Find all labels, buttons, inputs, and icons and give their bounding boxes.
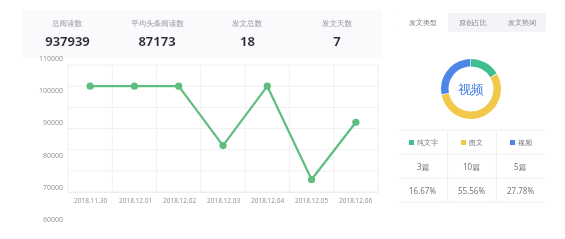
staticText: 发文天数 xyxy=(322,19,352,28)
button[interactable]: 发文热词 xyxy=(497,13,546,32)
staticText: 发文总数 xyxy=(232,19,262,28)
staticText: 发文热词 xyxy=(508,18,536,27)
staticText: 纯文字 xyxy=(417,138,438,147)
staticText: 2018.12.06 xyxy=(339,196,373,205)
staticText: 70000 xyxy=(43,183,64,193)
staticText: 图文 xyxy=(469,138,483,147)
staticText: 10篇 xyxy=(463,161,481,172)
staticText: 937939 xyxy=(45,32,90,50)
staticText: 视频 xyxy=(518,138,532,147)
button[interactable]: 纯文字 xyxy=(399,130,447,154)
button[interactable]: 原创占比 xyxy=(448,13,497,32)
staticText: 55.56% xyxy=(458,185,486,196)
staticText: 5篇 xyxy=(514,161,527,172)
staticText: 60000 xyxy=(43,215,64,225)
staticText: 2018.12.03 xyxy=(207,196,241,205)
staticText: 总阅读数 xyxy=(52,19,82,28)
button[interactable]: 发文总数 xyxy=(202,10,292,58)
button[interactable]: 发文类型 xyxy=(398,13,448,32)
staticText: 平均头条阅读数 xyxy=(131,19,184,28)
staticText: 2018.12.01 xyxy=(119,196,153,205)
staticText: 87173 xyxy=(138,32,176,50)
button[interactable]: 平均头条阅读数 xyxy=(112,10,202,58)
staticText: 16.67% xyxy=(409,185,437,196)
button[interactable]: 发文天数 xyxy=(292,10,382,58)
staticText: 发文类型 xyxy=(409,18,437,27)
staticText: 7 xyxy=(333,32,341,50)
button[interactable]: 视频 xyxy=(496,130,545,154)
staticText: 110000 xyxy=(39,54,64,64)
staticText: 2018.12.05 xyxy=(295,196,329,205)
staticText: 视频 xyxy=(458,81,484,97)
button[interactable]: 总阅读数 xyxy=(22,10,112,58)
staticText: 2018.12.02 xyxy=(163,196,197,205)
staticText: 80000 xyxy=(43,151,64,161)
staticText: 90000 xyxy=(43,118,64,128)
button[interactable]: 图文 xyxy=(447,130,496,154)
staticText: 27.78% xyxy=(507,185,535,196)
staticText: 2018.12.04 xyxy=(251,196,285,205)
staticText: 3篇 xyxy=(417,161,430,172)
staticText: 原创占比 xyxy=(459,18,487,27)
staticText: 18 xyxy=(240,32,255,50)
staticText: 2018.11.30 xyxy=(74,196,108,205)
staticText: 100000 xyxy=(39,86,64,96)
